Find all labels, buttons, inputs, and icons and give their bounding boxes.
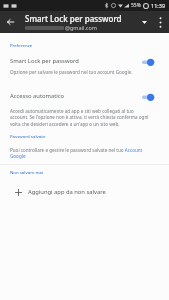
- button[interactable]: Toggle: [142, 92, 155, 108]
- staticText: Opzione per salvare le password nel tuo …: [10, 69, 133, 75]
- staticText: Non salvare mai: [10, 169, 44, 175]
- button[interactable]: Smart Lock per password: [0, 57, 169, 75]
- staticText: Smart Lock per password: [10, 57, 79, 65]
- button[interactable]: Toggle: [142, 57, 155, 73]
- staticText: 55%: [131, 2, 141, 9]
- staticText: Accedi automaticamente ad app e siti web…: [10, 108, 152, 128]
- staticText: Smart Lock per password: [25, 13, 122, 24]
- staticText: @gmail.com: [65, 24, 97, 31]
- staticText: Aggiungi app da non salvare: [28, 188, 106, 196]
- staticText: Preferenze: [10, 42, 33, 48]
- staticText: 11:39: [151, 2, 166, 9]
- button[interactable]: Expand account: [137, 11, 151, 33]
- staticText: Puoi controllare e gestire le password s…: [10, 147, 152, 160]
- button[interactable]: Accesso automatico: [0, 92, 169, 128]
- button[interactable]: Puoi controllare e gestire le password s…: [0, 147, 169, 160]
- staticText: Accesso automatico: [10, 92, 65, 100]
- staticText: Password salvate: [10, 133, 46, 139]
- button[interactable]: Aggiungi app da non salvare: [0, 188, 169, 196]
- button[interactable]: Back: [0, 11, 21, 33]
- button[interactable]: More options: [151, 11, 169, 33]
